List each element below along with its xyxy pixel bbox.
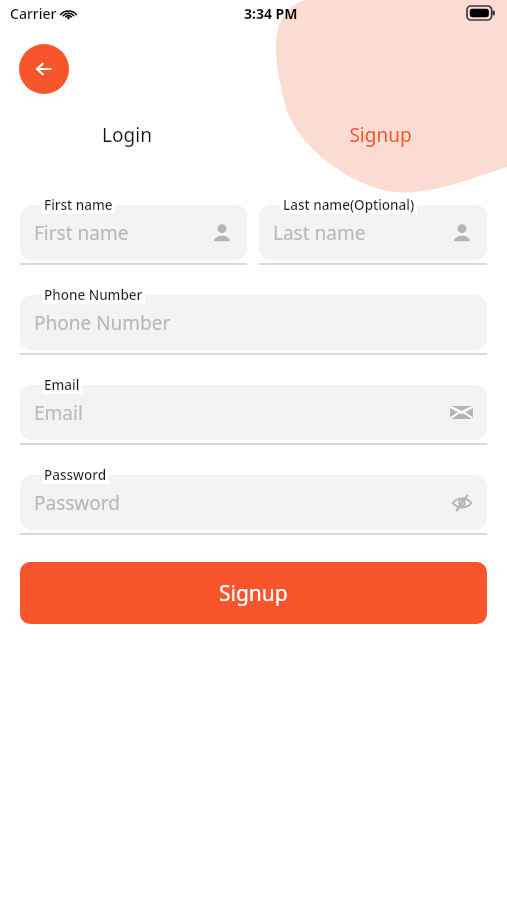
staticText: Last name(Optional) <box>283 196 415 214</box>
staticText: Signup <box>349 122 412 148</box>
staticText: First name <box>34 220 129 246</box>
button[interactable]: Phone Number <box>20 295 487 350</box>
staticText: 3:34 PM <box>244 4 298 23</box>
button[interactable]: Signup <box>253 118 507 152</box>
staticText: Login <box>102 122 152 148</box>
button[interactable]: Back <box>19 44 69 94</box>
button[interactable]: First name <box>20 205 247 260</box>
button[interactable]: Signup <box>20 562 487 624</box>
staticText: Password <box>44 466 107 484</box>
staticText: Signup <box>219 579 288 608</box>
staticText: Password <box>34 490 120 516</box>
staticText: First name <box>44 196 113 214</box>
staticText: Phone Number <box>44 286 143 304</box>
staticText: Phone Number <box>34 310 171 336</box>
staticText: Carrier <box>10 4 57 23</box>
staticText: Last name <box>273 220 366 246</box>
staticText: Email <box>44 376 80 394</box>
button[interactable]: Login <box>0 118 253 152</box>
button[interactable]: Password <box>20 475 487 530</box>
button[interactable]: Last name <box>259 205 487 260</box>
button[interactable]: Email <box>20 385 487 440</box>
staticText: Email <box>34 400 83 426</box>
